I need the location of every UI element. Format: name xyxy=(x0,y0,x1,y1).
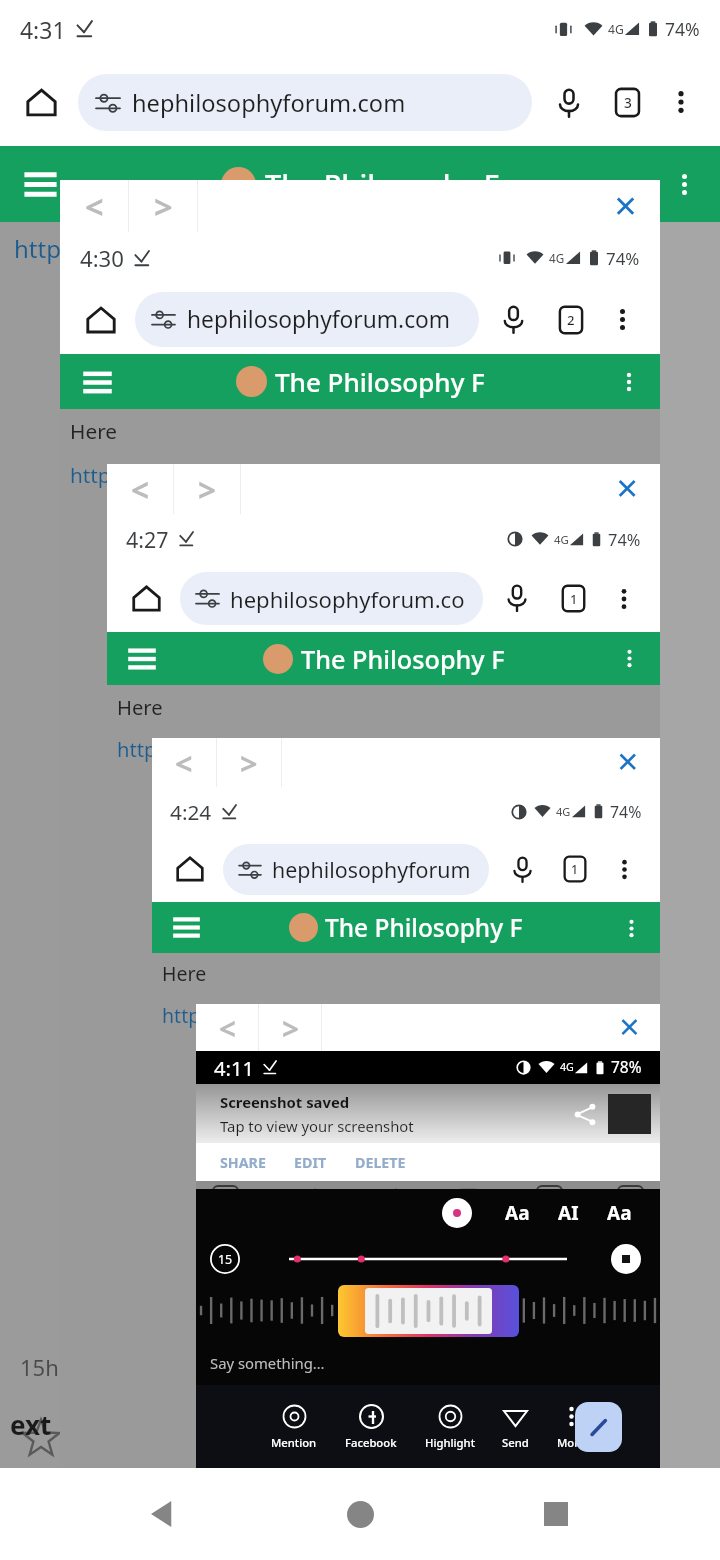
button[interactable]: Back xyxy=(132,1482,196,1546)
button[interactable] xyxy=(338,1285,519,1337)
button[interactable]: Back xyxy=(196,1004,258,1051)
staticText: ✕ xyxy=(615,472,640,506)
staticText: 4G xyxy=(549,250,565,266)
button[interactable]: Tabs xyxy=(602,77,653,128)
staticText: 4:31 xyxy=(20,14,66,45)
button[interactable]: Voice search xyxy=(543,77,594,128)
button[interactable]: Tabs xyxy=(549,574,597,622)
staticText: 4:11 xyxy=(214,1054,254,1081)
staticText: hephilosophyforum.com xyxy=(187,304,451,335)
staticText: Aa xyxy=(607,1200,632,1226)
staticText: < xyxy=(85,184,104,228)
button[interactable]: hephilosophyforum.com xyxy=(223,844,489,895)
button[interactable]: Back xyxy=(60,180,128,232)
button[interactable]: Close xyxy=(592,180,660,232)
button[interactable]: More options xyxy=(600,297,644,341)
staticText: DELETE xyxy=(355,1153,406,1172)
staticText: < xyxy=(219,1008,236,1048)
button[interactable]: More options xyxy=(602,577,645,620)
button[interactable]: Forward xyxy=(174,464,240,514)
staticText: Facebook xyxy=(345,1435,397,1450)
button[interactable]: Forward xyxy=(129,180,197,232)
button[interactable]: Send xyxy=(502,1404,529,1450)
staticText: Highlight xyxy=(425,1435,475,1450)
button[interactable] xyxy=(442,1198,472,1228)
button[interactable]: More options xyxy=(603,848,645,890)
button[interactable]: hephilosophyforum.com xyxy=(135,292,479,347)
staticText: 3 xyxy=(624,93,632,112)
button[interactable]: Tabs xyxy=(552,846,598,892)
staticText: ✕ xyxy=(613,189,639,224)
button[interactable]: DELETE xyxy=(355,1153,434,1172)
staticText: EDIT xyxy=(294,1153,327,1172)
button[interactable]: hephilosophyforum.com xyxy=(180,572,483,625)
staticText: Tap to view your screenshot xyxy=(220,1116,414,1136)
button[interactable]: More xyxy=(611,364,647,400)
button[interactable]: hephilosophyforum.com xyxy=(78,74,532,131)
staticText: 1 xyxy=(571,861,579,878)
button[interactable]: Menu xyxy=(76,361,118,403)
button[interactable]: More xyxy=(612,641,647,676)
staticText: 4G xyxy=(560,1060,574,1075)
staticText: < xyxy=(131,468,150,511)
button[interactable]: Menu xyxy=(122,639,162,679)
staticText: SHARE xyxy=(220,1153,266,1172)
button[interactable]: Highlight xyxy=(425,1404,475,1450)
button[interactable] xyxy=(611,1244,641,1274)
staticText: ext xyxy=(10,1407,52,1442)
button[interactable]: Forward xyxy=(259,1004,321,1051)
button[interactable]: Facebook xyxy=(345,1404,397,1450)
staticText: > xyxy=(198,468,217,511)
button[interactable]: Edit xyxy=(575,1402,622,1452)
staticText: Here xyxy=(162,960,207,987)
button[interactable]: Close xyxy=(596,738,660,787)
staticText: Mention xyxy=(271,1435,317,1450)
staticText: 4:30 xyxy=(80,243,124,273)
button[interactable]: Home xyxy=(76,295,125,344)
staticText: > xyxy=(282,1008,299,1048)
button[interactable]: Back xyxy=(107,464,173,514)
staticText: O God! I could be boun xyxy=(220,1183,557,1189)
button[interactable]: Voice search xyxy=(489,295,538,344)
button[interactable]: Back xyxy=(152,738,216,787)
staticText: hephilosophyforum.com xyxy=(132,87,406,119)
staticText: Here xyxy=(117,693,163,720)
button[interactable]: Menu xyxy=(167,908,206,947)
staticText: http xyxy=(14,232,61,265)
staticText: 4:24 xyxy=(170,798,212,826)
button[interactable]: More xyxy=(614,911,648,945)
staticText: 2 xyxy=(567,311,575,329)
button[interactable]: More options xyxy=(658,79,704,125)
staticText: 15h xyxy=(20,1352,59,1382)
button[interactable]: Say something… xyxy=(210,1340,660,1385)
staticText: The Philosophy F xyxy=(325,911,523,944)
button[interactable]: More xyxy=(557,1404,586,1450)
button[interactable]: Close xyxy=(594,464,660,514)
button[interactable]: Forward xyxy=(217,738,281,787)
button[interactable]: EDIT xyxy=(294,1153,355,1172)
button[interactable]: Home xyxy=(16,77,67,128)
staticText: 74% xyxy=(665,17,700,41)
staticText: 4G xyxy=(608,21,624,38)
button[interactable]: Recents xyxy=(524,1482,588,1546)
button[interactable]: Home xyxy=(122,574,170,622)
button[interactable]: Home xyxy=(167,846,213,892)
staticText: Send xyxy=(502,1435,529,1450)
button[interactable]: More xyxy=(664,164,705,205)
button[interactable]: Voice search xyxy=(493,574,541,622)
staticText: 1 xyxy=(570,590,578,607)
button[interactable]: Home xyxy=(328,1482,392,1546)
button[interactable]: Mention xyxy=(271,1404,317,1450)
staticText: hephilosophyforum.com xyxy=(230,584,467,614)
staticText: Screenshot saved xyxy=(220,1092,350,1112)
staticText: 4G xyxy=(554,532,569,547)
staticText: hephilosophyforum.com xyxy=(272,855,473,884)
staticText: > xyxy=(154,184,173,228)
button[interactable]: Menu xyxy=(17,161,63,207)
button[interactable]: SHARE xyxy=(220,1153,294,1172)
button[interactable]: Close xyxy=(598,1004,660,1051)
button[interactable]: Tabs xyxy=(546,295,595,344)
button[interactable]: Voice search xyxy=(499,846,545,892)
staticText: Aa xyxy=(505,1200,530,1226)
button[interactable] xyxy=(574,1103,597,1126)
